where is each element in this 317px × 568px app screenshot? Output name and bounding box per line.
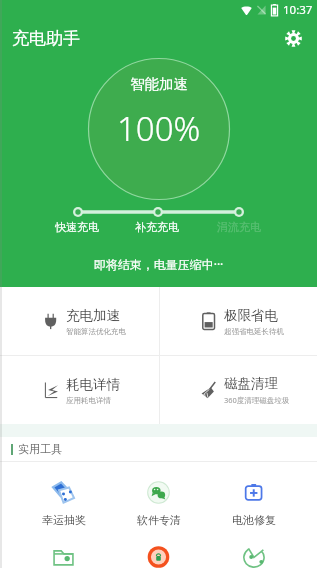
staticText: 软件专清 <box>137 513 181 527</box>
staticText: 360度清理磁盘垃圾 <box>224 395 290 405</box>
button[interactable]: 应用加锁 <box>111 546 206 568</box>
button[interactable]: 文件管理 <box>16 546 111 568</box>
button[interactable]: Settings <box>277 22 309 54</box>
staticText: 智能算法优化充电 <box>66 327 126 336</box>
staticText: 磁盘清理 <box>224 375 278 392</box>
button[interactable]: 极限省电 <box>158 287 317 355</box>
staticText: 实用工具 <box>18 442 62 456</box>
staticText: 涓流充电 <box>217 220 261 234</box>
staticText: 快速充电 <box>55 220 99 234</box>
button[interactable]: 磁盘清理 <box>158 356 317 424</box>
staticText: 智能加速 <box>130 75 188 93</box>
staticText: 耗电详情 <box>66 376 120 393</box>
staticText: 极限省电 <box>224 307 278 324</box>
button[interactable]: 耗电详情 <box>0 356 158 424</box>
staticText: 10:37 <box>283 2 313 18</box>
button[interactable]: 充电加速 <box>0 287 158 355</box>
button[interactable]: 软件专清 <box>111 481 206 527</box>
button[interactable]: 电池修复 <box>206 481 301 527</box>
staticText: 补充充电 <box>135 220 179 234</box>
button[interactable]: 流量监控 <box>206 546 301 568</box>
button[interactable]: 幸运抽奖 <box>16 481 111 527</box>
staticText: 电池修复 <box>232 513 276 527</box>
staticText: 超强省电延长待机 <box>224 327 284 336</box>
staticText: 即将结束，电量压缩中··· <box>0 256 317 272</box>
staticText: 幸运抽奖 <box>42 513 86 527</box>
staticText: 应用耗电详情 <box>66 396 111 405</box>
staticText: 100% <box>117 106 201 151</box>
staticText: 充电助手 <box>12 28 80 49</box>
staticText: 充电加速 <box>66 307 120 324</box>
